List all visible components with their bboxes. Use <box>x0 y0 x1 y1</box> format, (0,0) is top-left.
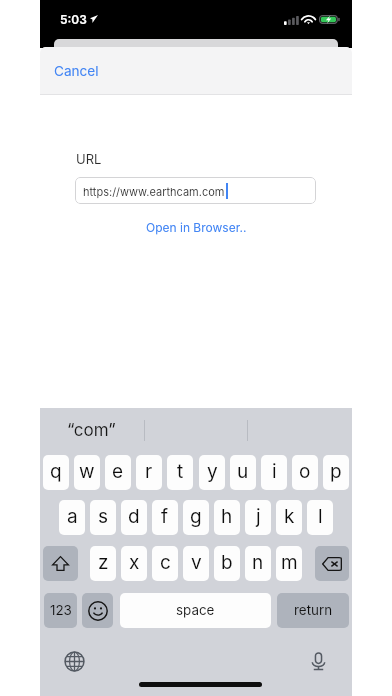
button[interactable]: y <box>199 455 225 490</box>
staticText: o <box>299 460 311 483</box>
button[interactable]: d <box>121 500 147 535</box>
staticText: d <box>128 505 140 528</box>
staticText: 123 <box>50 602 72 618</box>
staticText: h <box>221 505 233 528</box>
staticText: n <box>252 551 264 574</box>
button[interactable]: “com” <box>41 408 142 453</box>
staticText: q <box>50 460 62 483</box>
button[interactable]: m <box>276 546 302 581</box>
button[interactable]: Dictation <box>300 643 336 679</box>
staticText: u <box>237 460 249 483</box>
button[interactable]: x <box>121 546 147 581</box>
button[interactable]: v <box>183 546 209 581</box>
button[interactable]: w <box>74 455 100 490</box>
staticText: p <box>330 460 342 483</box>
button[interactable]: a <box>59 500 85 535</box>
button[interactable]: j <box>245 500 271 535</box>
staticText: 5:03 <box>60 12 87 27</box>
staticText: y <box>207 460 218 483</box>
staticText: r <box>145 460 153 483</box>
button[interactable]: f <box>152 500 178 535</box>
button[interactable]: o <box>292 455 318 490</box>
button[interactable]: Backspace <box>315 546 349 581</box>
button[interactable]: e <box>105 455 131 490</box>
staticText: z <box>98 551 109 574</box>
staticText: k <box>284 505 295 528</box>
staticText: https://www.earthcam.com <box>83 185 225 198</box>
button[interactable]: https://www.earthcam.com <box>75 177 316 204</box>
button[interactable]: b <box>214 546 240 581</box>
staticText: Cancel <box>54 63 99 79</box>
button[interactable]: q <box>43 455 69 490</box>
button[interactable]: g <box>183 500 209 535</box>
staticText: l <box>318 505 323 528</box>
staticText: URL <box>76 151 102 167</box>
button[interactable]: z <box>90 546 116 581</box>
staticText: x <box>129 551 140 574</box>
staticText: j <box>256 505 261 528</box>
button[interactable]: k <box>276 500 302 535</box>
staticText: space <box>176 602 215 618</box>
button[interactable]: t <box>167 455 193 490</box>
staticText: g <box>190 505 202 528</box>
button[interactable]: p <box>323 455 349 490</box>
button[interactable]: space <box>120 593 271 628</box>
button[interactable]: r <box>136 455 162 490</box>
button[interactable]: Cancel <box>44 55 109 87</box>
staticText: c <box>160 551 171 574</box>
staticText: e <box>112 460 124 483</box>
staticText: v <box>191 551 202 574</box>
staticText: Open in Browser.. <box>146 220 247 235</box>
button[interactable]: c <box>152 546 178 581</box>
staticText: i <box>272 460 277 483</box>
staticText: w <box>79 460 95 483</box>
staticText: a <box>67 505 78 528</box>
button[interactable]: Open in Browser.. <box>138 217 255 238</box>
staticText: s <box>98 505 109 528</box>
staticText: m <box>281 551 298 574</box>
button[interactable]: h <box>214 500 240 535</box>
staticText: b <box>221 551 233 574</box>
staticText: t <box>177 460 184 483</box>
button[interactable]: Emoji <box>82 593 113 628</box>
staticText: “com” <box>67 420 116 441</box>
button[interactable]: Change keyboard <box>56 643 92 679</box>
staticText: f <box>161 505 169 528</box>
button[interactable]: i <box>261 455 287 490</box>
button[interactable]: u <box>230 455 256 490</box>
staticText: return <box>294 602 333 618</box>
button[interactable]: n <box>245 546 271 581</box>
button[interactable]: Shift <box>43 546 78 581</box>
button[interactable]: s <box>90 500 116 535</box>
button[interactable]: l <box>307 500 333 535</box>
button[interactable]: return <box>277 593 349 628</box>
button[interactable]: 123 <box>44 593 77 628</box>
